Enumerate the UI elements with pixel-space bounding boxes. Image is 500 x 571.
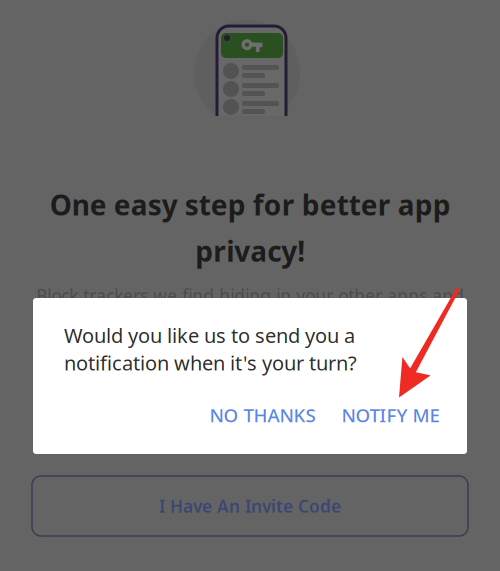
staticText: NO THANKS — [209, 403, 315, 427]
staticText: I Have An Invite Code — [159, 494, 341, 517]
button[interactable]: I Have An Invite Code — [32, 476, 468, 536]
staticText: One easy step for better app privacy! — [49, 186, 450, 269]
staticText: Block trackers we find hiding in your ot… — [36, 284, 464, 307]
button[interactable]: NO THANKS — [200, 397, 325, 433]
button[interactable]: NOTIFY ME — [332, 397, 449, 433]
staticText: NOTIFY ME — [341, 403, 439, 427]
staticText: Would you like us to send you a notifica… — [64, 322, 357, 376]
